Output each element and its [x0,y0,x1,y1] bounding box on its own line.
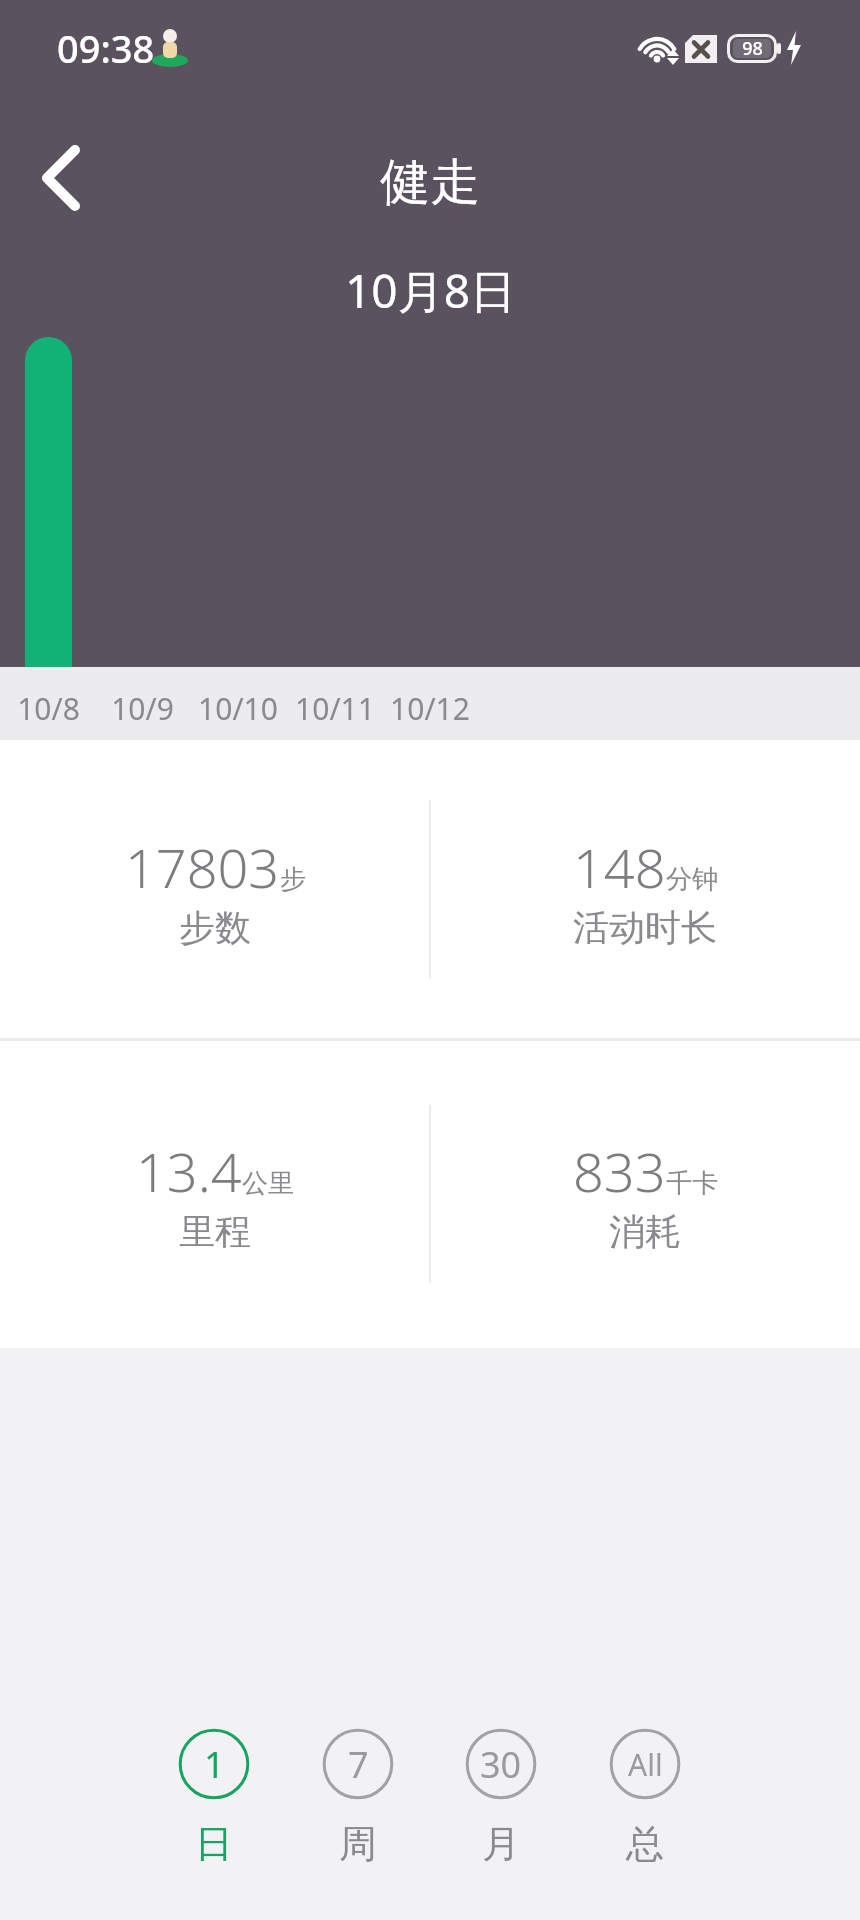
staticText: 千卡 [666,1167,718,1200]
button[interactable]: 1 [159,1724,269,1874]
staticText: 步数 [179,905,251,950]
staticText: 总 [626,1820,664,1868]
staticText: 活动时长 [573,905,717,950]
staticText: 10月8日 [345,259,516,322]
staticText: 10/9 [111,688,174,729]
staticText: 日 [195,1820,233,1868]
button[interactable]: 10/9 [0,667,110,731]
button[interactable]: 10/11 [0,667,110,731]
button[interactable]: 30 [446,1724,556,1874]
button[interactable] [20,130,120,230]
staticText: 消耗 [609,1209,681,1254]
staticText: 10/10 [198,688,278,729]
staticText: 30 [480,1740,522,1789]
staticText: 09:38 [57,22,155,74]
button[interactable]: 10/8 [0,667,110,731]
staticText: 周 [339,1820,377,1868]
staticText: 98 [742,36,763,61]
button[interactable]: 10/10 [0,667,110,731]
staticText: 公里 [242,1167,294,1200]
button[interactable]: 7 [303,1724,413,1874]
staticText: 1 [204,1740,225,1789]
staticText: 10/12 [390,688,470,729]
button[interactable]: All [590,1724,700,1874]
staticText: 148 [573,830,666,904]
button[interactable]: 10/12 [0,667,110,731]
staticText: 833 [573,1134,666,1208]
staticText: 里程 [179,1209,251,1254]
staticText: 步 [280,863,306,896]
staticText: 17803 [125,830,280,904]
staticText: 10/8 [17,688,80,729]
staticText: 分钟 [666,863,718,896]
staticText: 月 [482,1820,520,1868]
staticText: 7 [348,1740,369,1789]
staticText: 13.4 [136,1134,242,1208]
staticText: 10/11 [295,688,375,729]
staticText: 健走 [380,151,480,214]
staticText: All [628,1744,663,1785]
